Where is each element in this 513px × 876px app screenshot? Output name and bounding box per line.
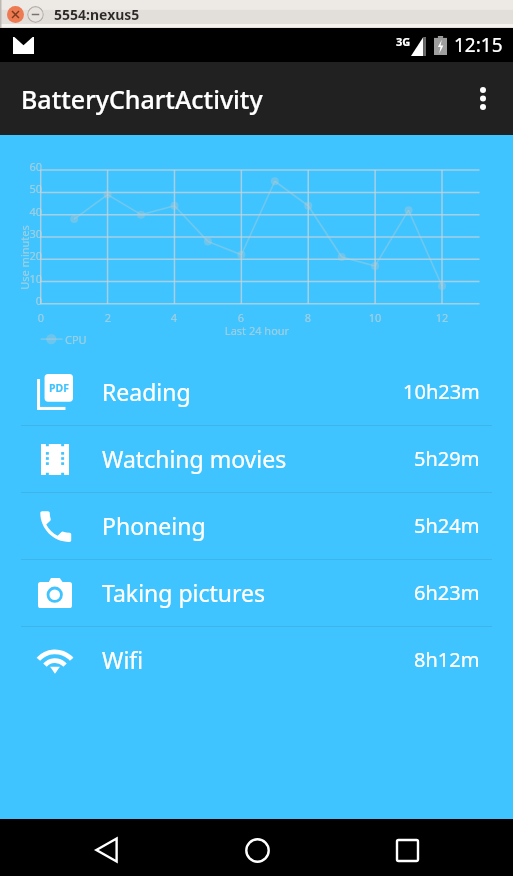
staticText: Watching movies [102, 443, 287, 474]
staticText: 6h23m [414, 579, 480, 606]
staticText: 30 [15, 226, 42, 241]
staticText: 3G [396, 34, 411, 49]
staticText: 8h12m [414, 646, 480, 673]
staticText: PDF [45, 381, 73, 395]
staticText: CPU [65, 332, 87, 347]
button[interactable]: Phoneing [0, 493, 513, 559]
staticText: Taking pictures [102, 577, 266, 608]
staticText: 5h29m [414, 445, 480, 472]
staticText: Wifi [102, 644, 144, 675]
staticText: 4 [162, 310, 186, 325]
staticText: 12 [430, 310, 454, 325]
staticText: 10 [363, 310, 387, 325]
button[interactable]: Recents [383, 826, 431, 874]
staticText: Reading [102, 376, 191, 407]
staticText: 5h24m [414, 512, 480, 539]
staticText: 12:15 [454, 32, 503, 58]
button[interactable]: Wifi [0, 627, 513, 693]
button[interactable]: Watching movies [0, 426, 513, 492]
staticText: Phoneing [102, 510, 206, 541]
staticText: 8 [296, 310, 320, 325]
staticText: 5554:nexus5 [54, 5, 140, 24]
button[interactable]: Home [233, 826, 281, 874]
button[interactable]: Back [82, 826, 130, 874]
button[interactable]: Minimize [27, 6, 44, 23]
staticText: 0 [29, 310, 53, 325]
button[interactable]: Close [7, 6, 24, 23]
staticText: 6 [229, 310, 253, 325]
staticText: 2 [96, 310, 120, 325]
staticText: BatteryChartActivity [21, 82, 263, 116]
staticText: Use minutes [16, 217, 31, 297]
staticText: 50 [15, 181, 42, 196]
staticText: 0 [15, 293, 42, 308]
button[interactable]: Taking pictures [0, 560, 513, 626]
staticText: Last 24 hour [207, 323, 307, 338]
button[interactable]: More options [459, 62, 507, 135]
staticText: 60 [15, 159, 42, 174]
staticText: 10 [15, 271, 42, 286]
staticText: 40 [15, 204, 42, 219]
staticText: 10h23m [403, 378, 480, 405]
staticText: 20 [15, 248, 42, 263]
button[interactable]: PDF [0, 359, 513, 425]
